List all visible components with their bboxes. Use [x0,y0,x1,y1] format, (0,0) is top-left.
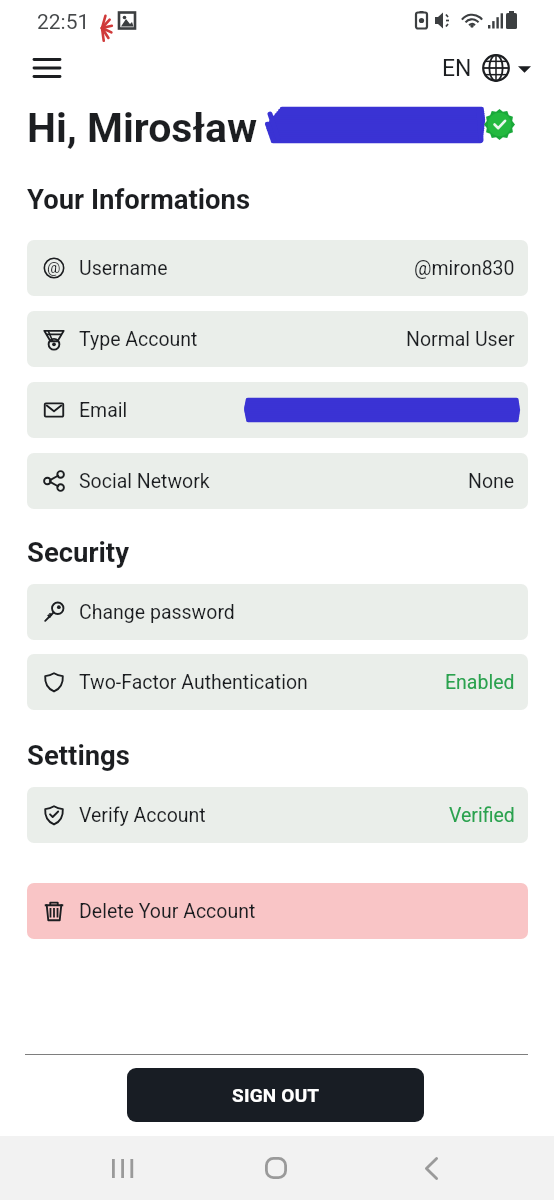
staticText: Security [27,536,130,568]
staticText: Normal User [406,328,515,351]
button[interactable]: Email [27,382,528,438]
staticText: Username [79,257,168,280]
staticText: Type Account [79,328,198,351]
staticText: EN [442,55,472,82]
staticText: @ [47,259,61,277]
staticText: Hi, Mirosław [27,104,258,152]
staticText: Delete Your Account [79,900,256,923]
button[interactable]: SIGN OUT [127,1068,424,1122]
button[interactable]: Menu [24,48,68,88]
button[interactable]: Language EN [442,52,531,84]
staticText: Change password [79,601,235,624]
staticText: Verified [449,804,515,827]
staticText: Your Informations [27,183,251,215]
staticText: Email [79,399,128,422]
button[interactable]: Change password [27,584,528,640]
staticText: None [468,470,515,493]
button[interactable]: Two-Factor Authentication [27,654,528,710]
button[interactable]: Recents [90,1146,154,1190]
staticText: SIGN OUT [232,1084,320,1106]
button[interactable]: Type Account [27,311,528,367]
staticText: Enabled [445,671,515,694]
staticText: Settings [27,739,130,771]
button[interactable]: Back [399,1146,463,1190]
staticText: @miron830 [414,257,515,280]
staticText: Two-Factor Authentication [79,671,308,694]
button[interactable]: Verify Account [27,787,528,843]
button[interactable]: Social Network [27,453,528,509]
staticText: 22:51 [37,10,90,35]
button[interactable]: @ [27,240,528,296]
button[interactable]: Delete Your Account [27,883,528,939]
staticText: Verify Account [79,804,206,827]
staticText: Social Network [79,470,210,493]
button[interactable]: Home [244,1146,308,1190]
